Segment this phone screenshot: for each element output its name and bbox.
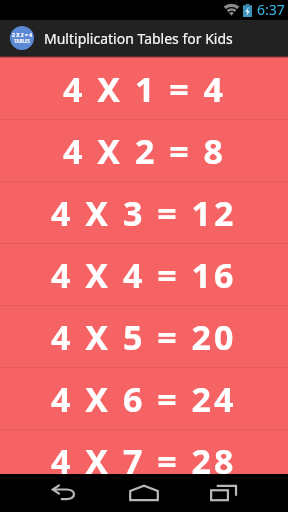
staticText: 4 X 5 = 20 — [51, 314, 237, 360]
staticText: 4 X 2 = 8 — [63, 128, 226, 174]
button[interactable]: Back — [40, 474, 86, 512]
button[interactable]: 4 X 8 = 32 — [0, 492, 288, 512]
button[interactable]: 4 X 5 = 20 — [0, 306, 288, 367]
button[interactable]: 4 X 7 = 28 — [0, 430, 288, 491]
staticText: TABLES — [14, 38, 30, 44]
staticText: 4 X 8 = 32 — [51, 492, 237, 512]
staticText: 4 X 3 = 12 — [51, 190, 237, 236]
staticText: 4 X 1 = 4 — [63, 66, 226, 112]
staticText: 4 X 4 = 16 — [51, 252, 237, 298]
button[interactable]: Multiplication Tables app icon — [10, 26, 34, 50]
staticText: 6:37 — [257, 0, 285, 19]
button[interactable]: 4 X 1 = 4 — [0, 58, 288, 119]
staticText: 4 X 7 = 28 — [51, 438, 237, 484]
staticText: 4 X 6 = 24 — [51, 376, 237, 422]
button[interactable]: 4 X 2 = 8 — [0, 120, 288, 181]
staticText: Multiplication Tables for Kids — [44, 29, 233, 48]
button[interactable]: Recents — [201, 474, 247, 512]
button[interactable]: 4 X 3 = 12 — [0, 182, 288, 243]
button[interactable]: 4 X 4 = 16 — [0, 244, 288, 305]
button[interactable]: 4 X 6 = 24 — [0, 368, 288, 429]
button[interactable]: Home — [121, 474, 167, 512]
staticText: 2 X 2 = 4 — [12, 32, 32, 39]
